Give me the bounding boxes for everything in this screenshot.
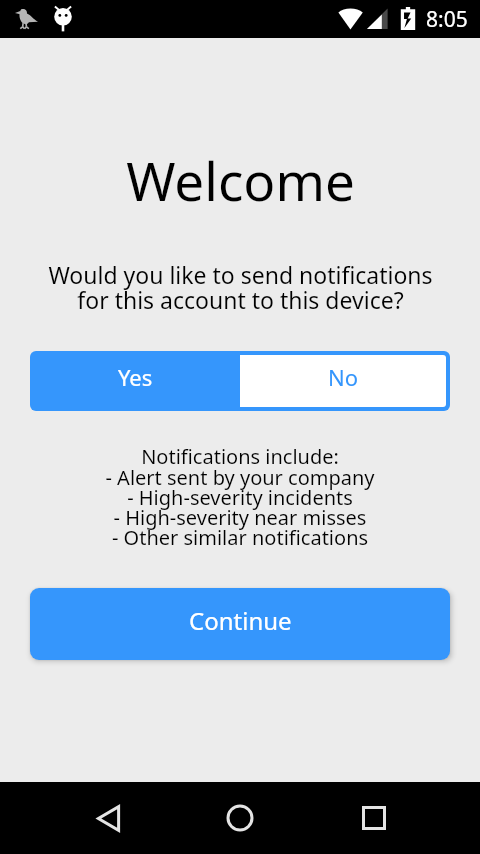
staticText: No: [328, 362, 359, 392]
button[interactable]: Yes: [30, 351, 240, 411]
button[interactable]: Back: [78, 788, 138, 848]
staticText: Would you like to send notifications for…: [48, 259, 433, 316]
button[interactable]: Home: [210, 788, 270, 848]
button[interactable]: Continue: [30, 588, 450, 660]
staticText: Continue: [189, 604, 292, 637]
staticText: 8:05: [426, 5, 468, 34]
staticText: Notifications include: - Alert sent by y…: [105, 443, 375, 551]
button[interactable]: No: [240, 355, 446, 407]
staticText: Welcome: [126, 144, 355, 216]
staticText: Yes: [118, 362, 153, 392]
button[interactable]: Recent apps: [344, 788, 404, 848]
